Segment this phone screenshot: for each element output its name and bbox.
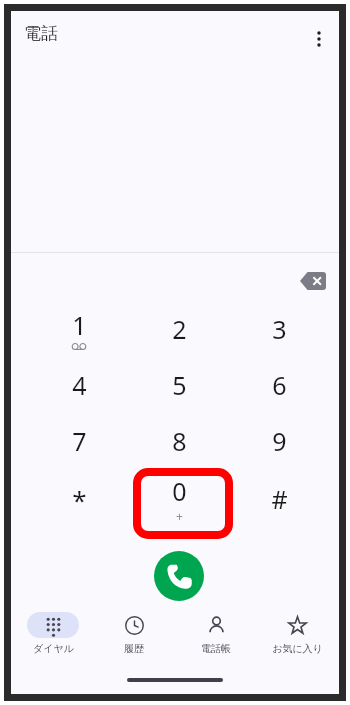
button[interactable]: 6	[233, 359, 325, 411]
staticText: 7	[72, 424, 87, 458]
staticText: 5	[172, 368, 187, 402]
button[interactable]: 8	[133, 415, 225, 467]
button[interactable]: 5	[133, 359, 225, 411]
staticText: 0	[172, 474, 187, 508]
staticText: お気に入り	[272, 642, 323, 655]
button[interactable]: ダイヤル	[13, 606, 93, 655]
staticText: 履歴	[124, 642, 144, 655]
button[interactable]: #	[233, 473, 325, 525]
staticText: 4	[72, 368, 87, 402]
staticText: 2	[172, 312, 187, 346]
staticText: ダイヤル	[33, 642, 74, 655]
button[interactable]: Call	[154, 551, 204, 601]
button[interactable]: *	[33, 473, 125, 525]
button[interactable]: 9	[233, 415, 325, 467]
button[interactable]: 1	[33, 303, 125, 355]
staticText: 6	[272, 368, 287, 402]
staticText: 1	[72, 308, 87, 342]
staticText: *	[72, 482, 87, 517]
staticText: +	[176, 508, 183, 524]
button[interactable]: お気に入り	[257, 606, 337, 655]
button[interactable]: 履歴	[94, 606, 174, 655]
staticText: 9	[272, 424, 287, 458]
button[interactable]: 3	[233, 303, 325, 355]
button[interactable]: 0	[133, 473, 225, 525]
staticText: 8	[172, 424, 187, 458]
button[interactable]: Backspace	[291, 263, 335, 299]
staticText: 電話	[24, 23, 58, 44]
button[interactable]: 7	[33, 415, 125, 467]
staticText: #	[271, 482, 288, 516]
staticText: 3	[272, 312, 287, 346]
button[interactable]: More options	[301, 21, 337, 57]
button[interactable]: 電話帳	[176, 606, 256, 655]
staticText: 電話帳	[201, 642, 231, 655]
button[interactable]: 4	[33, 359, 125, 411]
button[interactable]: 2	[133, 303, 225, 355]
